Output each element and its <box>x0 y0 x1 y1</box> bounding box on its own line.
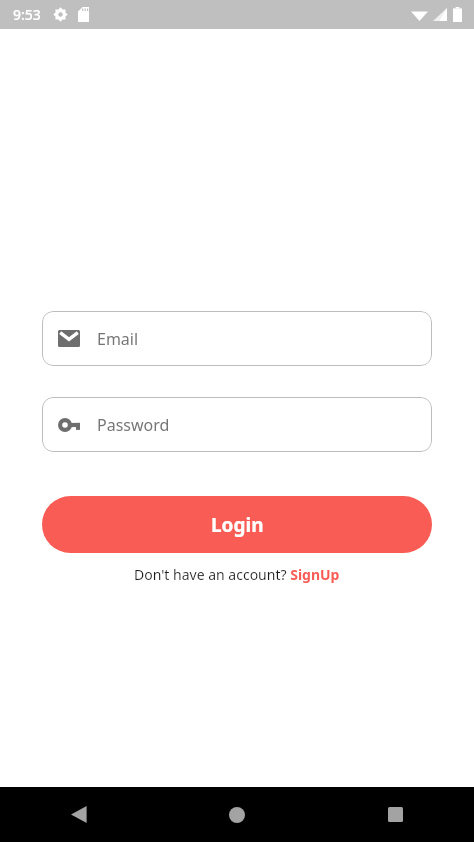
staticText: Email <box>97 328 139 350</box>
staticText: Password <box>97 414 170 436</box>
button[interactable]: Email <box>42 311 432 366</box>
button[interactable]: Don't have an account? SignUp <box>130 563 344 586</box>
staticText: Login <box>211 512 264 538</box>
button[interactable]: Password <box>42 397 432 452</box>
other: Password <box>58 418 80 432</box>
button[interactable]: Home <box>158 787 316 842</box>
button[interactable]: Login <box>42 496 432 553</box>
other: Email <box>58 330 80 347</box>
button[interactable]: Recent apps <box>316 787 474 842</box>
staticText: 9:53 <box>13 5 41 24</box>
button[interactable]: Back <box>0 787 158 842</box>
